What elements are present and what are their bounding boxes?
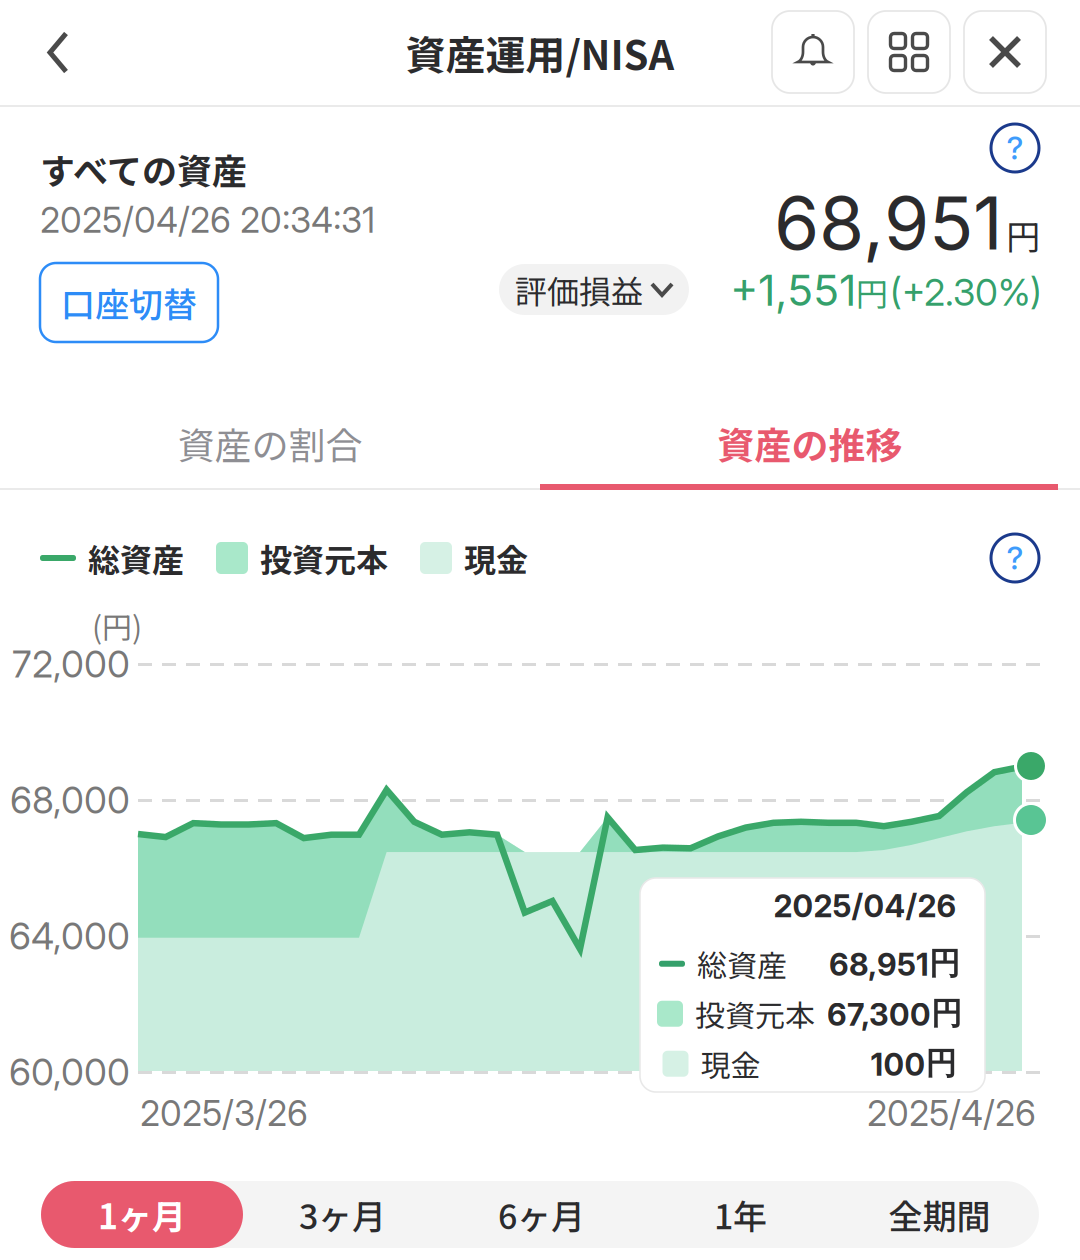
staticText: 現金: [700, 1042, 760, 1085]
button[interactable]: ヘルプ: [981, 114, 1049, 182]
staticText: 円: [856, 268, 888, 315]
staticText: 全期間: [888, 1190, 990, 1239]
staticText: 68,951円: [829, 944, 960, 983]
button[interactable]: メニュー: [868, 11, 950, 93]
staticText: 1年: [714, 1190, 767, 1239]
button[interactable]: お知らせ: [772, 11, 854, 93]
staticText: (円): [92, 604, 142, 647]
button[interactable]: 1年: [641, 1181, 840, 1248]
staticText: 68,951: [774, 179, 1003, 267]
staticText: +1,551: [730, 264, 856, 316]
staticText: 2025/04/26 20:34:31: [40, 199, 375, 241]
button[interactable]: 3ヶ月: [243, 1181, 442, 1248]
staticText: 2025/4/26: [867, 1092, 1036, 1134]
staticText: 1ヶ月: [98, 1190, 186, 1239]
button[interactable]: 6ヶ月: [442, 1181, 641, 1248]
button[interactable]: グラフのヘルプ: [982, 525, 1048, 591]
staticText: 投資元本: [695, 992, 815, 1035]
staticText: 資産運用/NISA: [405, 23, 674, 81]
staticText: 資産の推移: [717, 416, 902, 470]
staticText: 67,300円: [827, 994, 962, 1033]
staticText: 評価損益: [515, 266, 643, 313]
staticText: 総資産: [88, 535, 184, 581]
staticText: 現金: [464, 535, 528, 581]
staticText: 64,000: [9, 914, 130, 958]
button[interactable]: 資産の割合: [0, 396, 540, 490]
staticText: 3ヶ月: [299, 1190, 386, 1239]
staticText: 2025/3/26: [140, 1092, 308, 1134]
staticText: 投資元本: [260, 535, 388, 581]
button[interactable]: 資産の推移: [540, 396, 1080, 490]
staticText: 100円: [870, 1044, 956, 1083]
button[interactable]: 口座切替: [40, 263, 218, 342]
staticText: 総資産: [697, 942, 787, 985]
button[interactable]: 戻る: [0, 0, 116, 105]
button[interactable]: 1ヶ月: [41, 1181, 243, 1248]
staticText: 口座切替: [61, 278, 197, 327]
staticText: 60,000: [9, 1050, 130, 1094]
button[interactable]: 閉じる: [964, 11, 1046, 93]
staticText: 円: [1006, 210, 1040, 259]
staticText: 資産の割合: [177, 416, 362, 470]
staticText: 72,000: [12, 642, 130, 686]
staticText: 6ヶ月: [498, 1190, 585, 1239]
staticText: 68,000: [10, 778, 130, 822]
button[interactable]: 評価損益: [499, 264, 689, 315]
staticText: ?: [1006, 129, 1023, 167]
button[interactable]: 全期間: [840, 1181, 1039, 1248]
staticText: ?: [1006, 539, 1023, 577]
staticText: 2025/04/26: [773, 887, 956, 925]
staticText: (+2.30%): [890, 270, 1042, 315]
staticText: すべての資産: [40, 144, 247, 194]
